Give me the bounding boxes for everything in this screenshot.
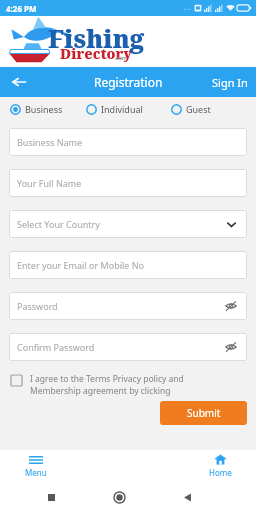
staticText: Fishing — [48, 21, 145, 55]
staticText: Password — [17, 300, 58, 312]
button[interactable]: Home — [107, 485, 131, 509]
staticText: Your Full Name — [17, 177, 82, 189]
button[interactable]: Password — [9, 292, 247, 320]
other: Select country — [224, 217, 238, 231]
button[interactable]: Home — [198, 450, 242, 482]
button[interactable]: Guest — [171, 97, 256, 121]
button[interactable]: I agree to the Terms Privacy policy and … — [11, 373, 245, 397]
staticText: I agree to the Terms Privacy policy and … — [30, 373, 184, 397]
button[interactable]: Confirm Password — [9, 333, 247, 361]
button[interactable]: Submit — [160, 401, 247, 425]
staticText: Business Name — [17, 136, 83, 148]
button[interactable]: Toggle password visibility — [223, 339, 239, 355]
button[interactable]: Menu — [14, 450, 58, 482]
button[interactable]: Sign In — [204, 67, 256, 97]
staticText: Business — [25, 103, 63, 115]
button[interactable]: Business — [10, 97, 86, 121]
button[interactable]: Enter your Email or Mobile No — [9, 251, 247, 279]
button[interactable]: Recents — [39, 485, 63, 509]
staticText: Home — [209, 467, 232, 478]
staticText: Enter your Email or Mobile No — [17, 259, 145, 271]
button[interactable]: Your Full Name — [9, 169, 247, 197]
staticText: Individual — [101, 103, 143, 115]
staticText: Guest — [186, 103, 211, 115]
staticText: .com — [115, 55, 127, 62]
staticText: Registration — [94, 74, 163, 90]
staticText: Menu — [25, 467, 47, 478]
staticText: Confirm Password — [17, 341, 95, 353]
button[interactable]: Back — [175, 485, 199, 509]
staticText: 4:26 PM — [6, 3, 37, 14]
staticText: Submit — [187, 406, 221, 420]
button[interactable]: Individual — [86, 97, 171, 121]
button[interactable]: Select Your Country — [9, 210, 247, 238]
button[interactable]: Business Name — [9, 128, 247, 156]
staticText: Directory — [60, 44, 132, 63]
button[interactable]: Back — [0, 67, 38, 97]
staticText: Select Your Country — [17, 218, 100, 230]
button[interactable]: Toggle password visibility — [223, 298, 239, 314]
staticText: Sign In — [212, 75, 248, 90]
